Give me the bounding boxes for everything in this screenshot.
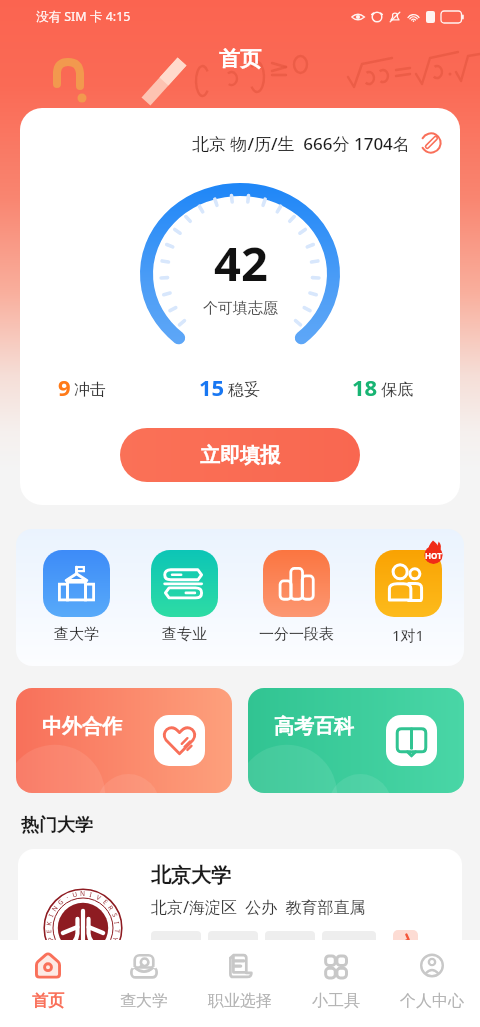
- staticText: 18: [352, 372, 378, 402]
- button[interactable]: 查大学: [43, 550, 110, 644]
- button[interactable]: 编辑志愿信息: [419, 131, 443, 155]
- staticText: 北京大学: [151, 863, 231, 888]
- staticText: 查专业: [162, 625, 207, 644]
- staticText: 1对1: [392, 625, 425, 645]
- button[interactable]: HOT: [375, 550, 442, 645]
- button[interactable]: 查专业: [151, 550, 218, 644]
- staticText: 首页: [219, 46, 261, 72]
- button[interactable]: 北京大学: [18, 849, 462, 999]
- staticText: 职业选择: [208, 991, 272, 1011]
- staticText: 15: [199, 372, 225, 402]
- staticText: HOT: [425, 550, 442, 561]
- staticText: 立即填报: [200, 443, 280, 468]
- staticText: 42: [214, 231, 268, 295]
- button[interactable]: 首页: [0, 940, 96, 1027]
- button[interactable]: 中外合作: [16, 688, 232, 793]
- button[interactable]: 查大学: [96, 940, 192, 1027]
- staticText: 查大学: [120, 991, 168, 1011]
- button[interactable]: 小工具: [288, 940, 384, 1027]
- button[interactable]: 高考百科: [248, 688, 464, 793]
- button[interactable]: 个人中心: [384, 940, 480, 1027]
- staticText: 没有 SIM 卡 4:15: [36, 8, 131, 25]
- staticText: 高考百科: [274, 714, 354, 739]
- staticText: 首页: [32, 991, 64, 1011]
- button[interactable]: 立即填报: [120, 428, 360, 482]
- button[interactable]: 职业选择: [192, 940, 288, 1027]
- staticText: 小工具: [312, 991, 360, 1011]
- button[interactable]: 一分一段表: [259, 550, 334, 644]
- button[interactable]: 查看详情: [393, 930, 418, 947]
- staticText: 稳妥: [228, 380, 260, 400]
- staticText: 热门大学: [21, 814, 93, 837]
- staticText: 冲击: [74, 380, 106, 400]
- staticText: 保底: [381, 380, 413, 400]
- staticText: 中外合作: [42, 714, 122, 739]
- staticText: 北京/海淀区 公办 教育部直属: [151, 896, 366, 918]
- staticText: 一分一段表: [259, 625, 334, 644]
- staticText: 个可填志愿: [203, 299, 278, 318]
- staticText: 个人中心: [400, 991, 464, 1011]
- staticText: 查大学: [54, 625, 99, 644]
- staticText: 9: [58, 372, 71, 402]
- staticText: 北京 物/历/生 666分 1704名: [192, 132, 410, 155]
